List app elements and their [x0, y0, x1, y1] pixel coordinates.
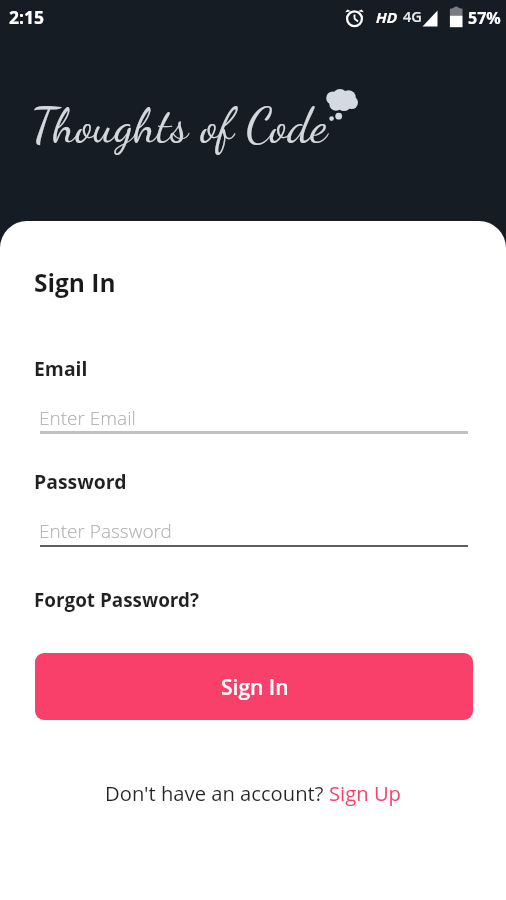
- staticText: 57%: [468, 7, 501, 29]
- staticText: Sign In: [34, 266, 116, 299]
- staticText: Sign In: [221, 673, 289, 702]
- staticText: Thoughts of Code: [31, 96, 328, 154]
- staticText: 2:15: [9, 5, 44, 29]
- staticText: HD: [375, 8, 397, 27]
- staticText: Password: [34, 468, 127, 494]
- staticText: 4G: [403, 7, 422, 27]
- staticText: Email: [34, 355, 88, 381]
- staticText: Don't have an account?: [105, 779, 329, 807]
- button[interactable]: Forgot Password?: [34, 587, 200, 613]
- button[interactable]: Sign Up: [329, 779, 401, 807]
- button[interactable]: Sign In: [35, 653, 473, 720]
- staticText: Enter Email: [39, 405, 136, 431]
- staticText: Enter Password: [39, 518, 172, 544]
